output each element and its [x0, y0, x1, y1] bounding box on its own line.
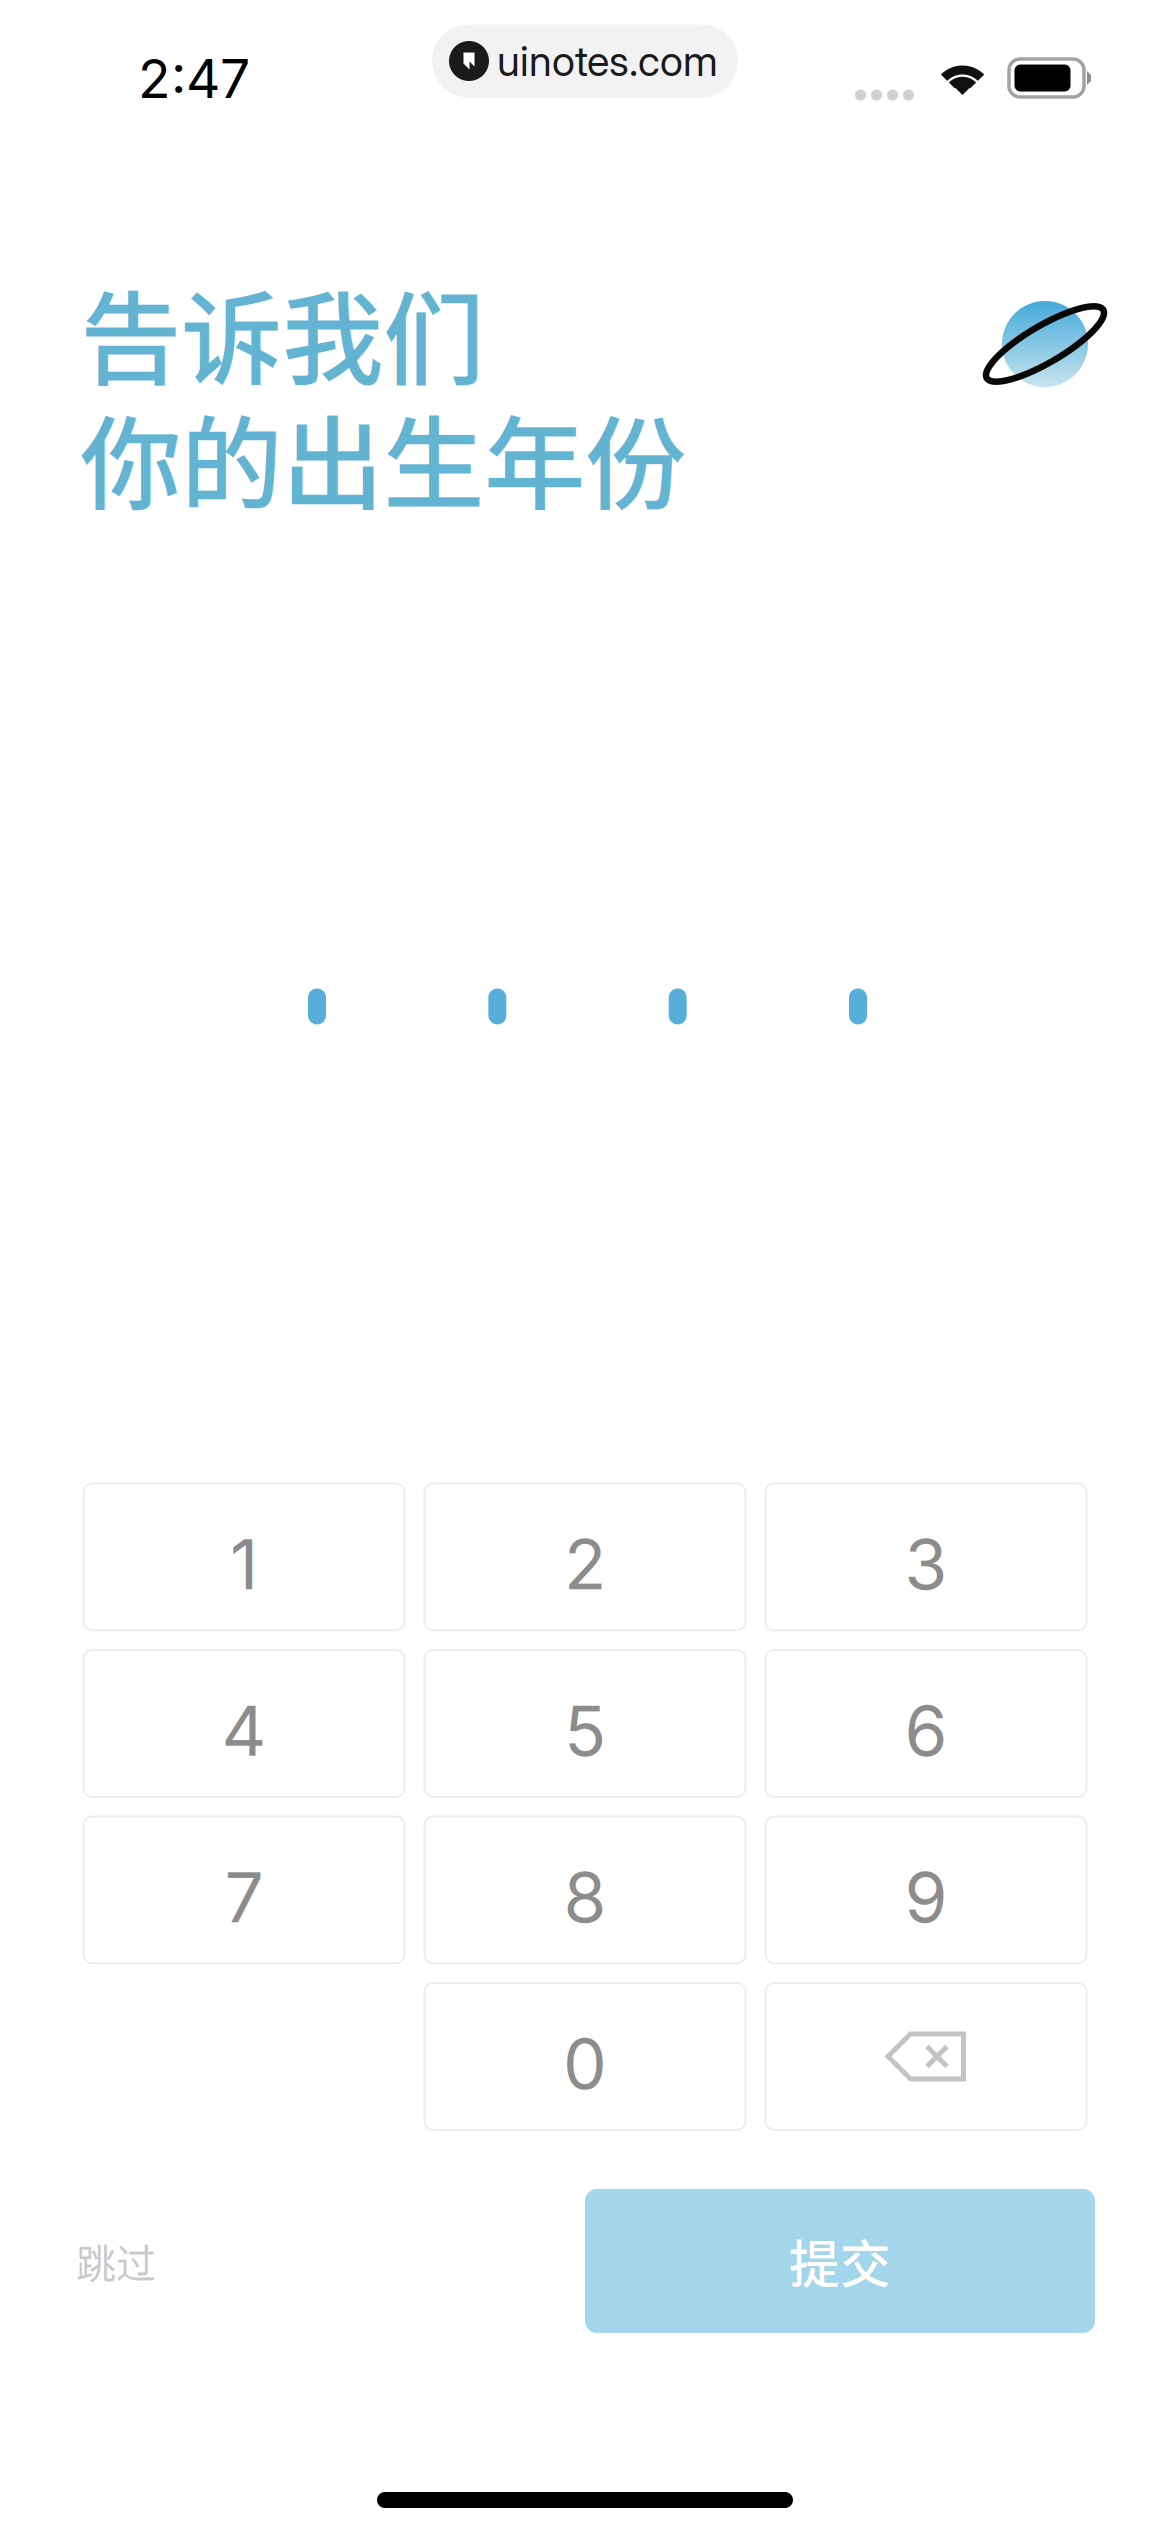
button[interactable]: 1	[83, 1483, 404, 1630]
staticText: 9	[904, 1855, 947, 1939]
staticText: 3	[904, 1522, 947, 1606]
staticText: 8	[563, 1855, 606, 1939]
button[interactable]: 8	[424, 1816, 745, 1963]
staticText: 5	[564, 1688, 606, 1772]
staticText: 提交	[789, 2224, 891, 2298]
staticText: 2:47	[138, 46, 250, 111]
button[interactable]: 4	[83, 1650, 404, 1797]
staticText: 4	[221, 1688, 266, 1772]
staticText: 2	[564, 1522, 606, 1606]
staticText: 告诉我们	[80, 259, 484, 406]
button[interactable]: 9	[765, 1816, 1086, 1963]
button[interactable]: 7	[83, 1816, 404, 1963]
button[interactable]: 3	[765, 1483, 1086, 1630]
button[interactable]: 5	[424, 1650, 745, 1797]
button[interactable]: 2	[424, 1483, 745, 1630]
staticText: 跳过	[76, 2232, 156, 2290]
button[interactable]: 跳过	[66, 2202, 166, 2320]
button[interactable]: 提交	[585, 2189, 1095, 2333]
staticText: 0	[563, 2021, 607, 2105]
staticText: 1	[230, 1522, 258, 1606]
button[interactable]: 6	[765, 1650, 1086, 1797]
button[interactable]: 0	[424, 1983, 745, 2130]
staticText: 你的出生年份	[80, 384, 686, 530]
staticText: 7	[224, 1855, 263, 1939]
staticText: 6	[904, 1688, 947, 1772]
staticText: uinotes.com	[497, 36, 718, 86]
button[interactable]: Delete	[765, 1983, 1086, 2130]
